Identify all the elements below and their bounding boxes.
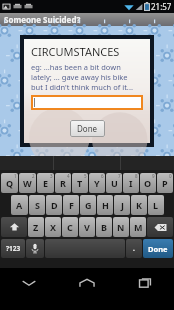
staticText: C [67, 221, 73, 233]
button[interactable]: Z [28, 217, 44, 237]
staticText: eg: ...has been a bit down [31, 62, 121, 72]
staticText: A [16, 199, 23, 211]
staticText: P [162, 177, 168, 189]
button[interactable]: Backspace [147, 217, 173, 237]
staticText: R [60, 177, 66, 189]
staticText: Y [94, 177, 100, 189]
button[interactable]: M [130, 217, 146, 237]
button[interactable]: U [106, 173, 122, 193]
staticText: H [102, 199, 109, 211]
staticText: X [50, 221, 57, 233]
staticText: W [23, 177, 32, 189]
button[interactable]: K [131, 195, 147, 215]
staticText: Done [148, 244, 168, 254]
staticText: N [117, 221, 125, 233]
staticText: L [153, 199, 159, 211]
staticText: U [111, 177, 118, 189]
staticText: lately; ... gave away his bike [31, 72, 128, 82]
button[interactable]: I [123, 173, 139, 193]
staticText: 2 [32, 173, 35, 179]
button[interactable]: J [114, 195, 130, 215]
button[interactable]: R [55, 173, 71, 193]
button[interactable]: Q [1, 173, 18, 193]
button[interactable]: T [72, 173, 88, 193]
staticText: . [133, 244, 135, 253]
button[interactable]: P [157, 173, 173, 193]
staticText: 3 [50, 173, 53, 179]
staticText: 21:57 [151, 1, 172, 12]
button[interactable]: Y [89, 173, 105, 193]
staticText: 7 [118, 173, 121, 179]
button[interactable]: Done [143, 239, 173, 258]
staticText: Someone Suicided? [4, 14, 81, 25]
button[interactable]: Voice input [26, 239, 44, 258]
staticText: 6 [101, 173, 104, 179]
button[interactable]: F [63, 195, 79, 215]
button[interactable]: Back [0, 268, 58, 297]
staticText: T [77, 177, 83, 189]
staticText: 4 [67, 173, 70, 179]
button[interactable]: X [45, 217, 61, 237]
button[interactable]: Shift [1, 217, 27, 237]
staticText: F [69, 199, 74, 211]
staticText: G [85, 199, 92, 211]
button[interactable]: G [80, 195, 96, 215]
staticText: I [129, 177, 133, 189]
button[interactable] [31, 95, 143, 110]
staticText: Z [33, 221, 39, 233]
staticText: S [35, 199, 40, 211]
button[interactable]: W [19, 173, 36, 193]
button[interactable]: D [46, 195, 62, 215]
staticText: CIRCUMSTANCES [31, 44, 120, 59]
staticText: K [136, 199, 142, 211]
button[interactable]: . [126, 239, 142, 258]
staticText: but I didn't think much of it... [31, 82, 133, 92]
staticText: 8 [135, 173, 138, 179]
button[interactable]: Recent apps [116, 268, 174, 297]
button[interactable]: Home [58, 268, 116, 297]
button[interactable]: S [29, 195, 45, 215]
button[interactable]: A [11, 195, 28, 215]
button[interactable]: Space [45, 239, 125, 258]
staticText: 0 [169, 173, 172, 179]
button[interactable]: B [96, 217, 112, 237]
button[interactable]: E [37, 173, 54, 193]
staticText: D [51, 199, 58, 211]
staticText: B [101, 221, 107, 233]
button[interactable]: V [79, 217, 95, 237]
staticText: 5 [84, 173, 87, 179]
staticText: J [121, 199, 124, 211]
button[interactable]: Done [70, 120, 105, 137]
staticText: E [43, 177, 49, 189]
staticText: 9 [152, 173, 155, 179]
staticText: Q [6, 177, 14, 189]
button[interactable]: C [62, 217, 78, 237]
staticText: V [84, 221, 90, 233]
button[interactable]: ?123 [1, 239, 25, 258]
staticText: M [134, 221, 143, 233]
staticText: O [144, 177, 152, 189]
button[interactable]: N [113, 217, 129, 237]
button[interactable]: O [140, 173, 156, 193]
staticText: ?123 [6, 244, 21, 253]
button[interactable]: H [97, 195, 113, 215]
button[interactable]: L [148, 195, 164, 215]
staticText: Done [77, 123, 98, 134]
staticText: 1 [14, 173, 17, 179]
